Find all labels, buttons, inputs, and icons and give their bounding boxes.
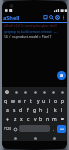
button[interactable]: Clipboard: [32, 89, 38, 95]
staticText: e: [18, 98, 21, 105]
staticText: n: [46, 116, 50, 123]
staticText: 14 / ro.product.model = Pixel 7: [4, 35, 52, 39]
staticText: r: [24, 98, 27, 105]
button[interactable]: Search: [48, 14, 54, 20]
button[interactable]: Back: [12, 135, 18, 141]
button[interactable]: Translate: [41, 89, 47, 95]
button[interactable]: Settings: [54, 14, 60, 20]
button[interactable]: v: [32, 115, 38, 123]
staticText: u: [42, 98, 46, 105]
button[interactable]: q: [3, 97, 9, 105]
staticText: x: [20, 116, 23, 123]
staticText: h: [39, 107, 43, 114]
button[interactable]: r: [22, 97, 28, 105]
button[interactable]: l: [59, 106, 65, 114]
staticText: g: [33, 107, 37, 114]
button[interactable]: d: [18, 106, 24, 114]
button[interactable]: Run command: [57, 71, 66, 80]
staticText: aShell: [3, 14, 20, 21]
button[interactable]: f: [25, 106, 31, 114]
button[interactable]: w: [10, 97, 16, 105]
staticText: k: [54, 107, 57, 114]
button[interactable]: More options: [60, 14, 66, 20]
button[interactable]: s: [11, 106, 17, 114]
staticText: z: [14, 116, 17, 123]
button[interactable]: Emoji: [12, 125, 18, 133]
button[interactable]: Space: [19, 125, 50, 132]
button[interactable]: Recents: [51, 135, 57, 141]
staticText: v: [34, 116, 37, 123]
button[interactable]: Enter: [57, 125, 66, 133]
button[interactable]: j: [45, 106, 51, 114]
staticText: s: [13, 107, 16, 114]
staticText: w: [11, 98, 15, 105]
staticText: y: [37, 98, 40, 105]
button[interactable]: b: [38, 115, 44, 123]
button[interactable]: k: [52, 106, 58, 114]
staticText: ?123: [4, 127, 11, 131]
staticText: t: [30, 98, 32, 105]
button[interactable]: Voice input: [59, 89, 65, 95]
staticText: getprop ro.build.version.release — devic…: [4, 30, 65, 34]
button[interactable]: y: [35, 97, 41, 105]
button[interactable]: Settings: [50, 89, 56, 95]
button[interactable]: z: [12, 115, 18, 123]
button[interactable]: x: [18, 115, 24, 123]
button[interactable]: ?123: [3, 125, 12, 133]
button[interactable]: n: [45, 115, 51, 123]
staticText: b: [39, 116, 43, 123]
button[interactable]: p: [60, 97, 66, 105]
button[interactable]: e: [16, 97, 22, 105]
button[interactable]: Home: [32, 135, 38, 141]
staticText: d: [19, 107, 23, 114]
button[interactable]: GIF: [22, 89, 28, 95]
button[interactable]: t: [28, 97, 34, 105]
button[interactable]: o: [53, 97, 59, 105]
staticText: p: [61, 98, 65, 105]
staticText: a: [60, 72, 63, 79]
button[interactable]: m: [51, 115, 57, 123]
button[interactable]: g: [32, 106, 38, 114]
button[interactable]: u: [41, 97, 47, 105]
button[interactable]: Bookmarks: [42, 14, 48, 20]
staticText: i: [49, 98, 51, 105]
staticText: aShell v3.8.0 running busybox shell comm…: [4, 24, 65, 28]
staticText: .: [53, 127, 55, 132]
staticText: f: [27, 107, 29, 114]
staticText: q: [4, 98, 8, 105]
button[interactable]: c: [25, 115, 31, 123]
staticText: m: [52, 116, 57, 123]
staticText: o: [54, 98, 58, 105]
staticText: l: [61, 107, 63, 114]
button[interactable]: Emoji: [13, 89, 19, 95]
button[interactable]: i: [47, 97, 53, 105]
button[interactable]: Shift: [3, 115, 11, 123]
staticText: j: [47, 107, 49, 114]
button[interactable]: h: [38, 106, 44, 114]
staticText: c: [27, 116, 30, 123]
button[interactable]: .: [51, 125, 57, 133]
staticText: a: [6, 107, 9, 114]
button[interactable]: Keyboard settings: [4, 89, 10, 95]
button[interactable]: Backspace: [58, 115, 66, 123]
button[interactable]: a: [4, 106, 10, 114]
